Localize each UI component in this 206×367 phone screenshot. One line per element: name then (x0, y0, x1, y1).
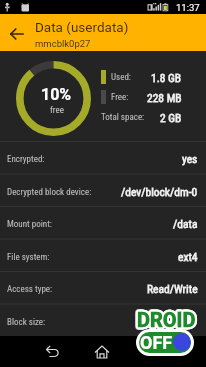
staticText: 1.8 GB (151, 71, 182, 84)
staticText: Used: (111, 72, 131, 83)
staticText: free (50, 105, 64, 116)
staticText: DROID (136, 309, 195, 332)
staticText: DROID (137, 307, 196, 330)
staticText: Encrypted: (7, 154, 45, 165)
button[interactable]: Home (88, 338, 116, 366)
staticText: ext4 (178, 250, 198, 263)
staticText: DROID (139, 308, 198, 331)
staticText: /data (173, 217, 198, 230)
staticText: DROID (137, 309, 196, 332)
button[interactable]: Block size: (0, 304, 206, 337)
button[interactable]: Navigate up (0, 17, 32, 49)
staticText: DROID (135, 307, 194, 330)
staticText: DROID (138, 310, 197, 333)
staticText: Free: (111, 92, 129, 103)
staticText: Read/Write (147, 282, 198, 295)
staticText: 228 MB (147, 91, 182, 104)
staticText: Decrypted block device: (7, 187, 92, 198)
staticText: 2 GB (160, 111, 182, 124)
staticText: 10% (41, 85, 72, 104)
staticText: DROID (139, 307, 198, 330)
staticText: DROID (136, 310, 195, 333)
staticText: DROID (137, 306, 196, 329)
staticText: DROID (138, 306, 197, 329)
staticText: DROID (137, 310, 196, 333)
button[interactable]: Access type: (0, 271, 206, 304)
button[interactable]: Encrypted: (0, 141, 206, 174)
staticText: DROID (139, 309, 198, 332)
staticText: DROID (137, 308, 196, 331)
button[interactable]: Back (38, 338, 66, 366)
button[interactable]: Mount point: (0, 206, 206, 239)
staticText: OFF (140, 332, 173, 353)
button[interactable]: Decrypted block device: (0, 174, 206, 207)
staticText: DROID (135, 308, 194, 331)
staticText: DROID (138, 309, 197, 332)
staticText: File system: (7, 252, 50, 263)
staticText: yes (182, 152, 198, 165)
staticText: DROID (136, 306, 195, 329)
staticText: 11:37 (176, 2, 200, 13)
staticText: DROID (136, 307, 195, 330)
staticText: Block size: (7, 317, 46, 328)
staticText: DROID (137, 308, 196, 331)
staticText: DROID (135, 309, 194, 332)
staticText: DROID (136, 308, 195, 331)
staticText: DROID (138, 307, 197, 330)
staticText: Data (userdata) (35, 19, 129, 35)
button[interactable]: File system: (0, 239, 206, 272)
staticText: DROID (138, 308, 197, 331)
staticText: mmcblk0p27 (35, 38, 91, 49)
staticText: Mount point: (7, 219, 52, 230)
staticText: Access type: (7, 284, 53, 295)
staticText: /dev/block/dm-0 (121, 185, 198, 198)
staticText: Total space: (101, 112, 145, 123)
